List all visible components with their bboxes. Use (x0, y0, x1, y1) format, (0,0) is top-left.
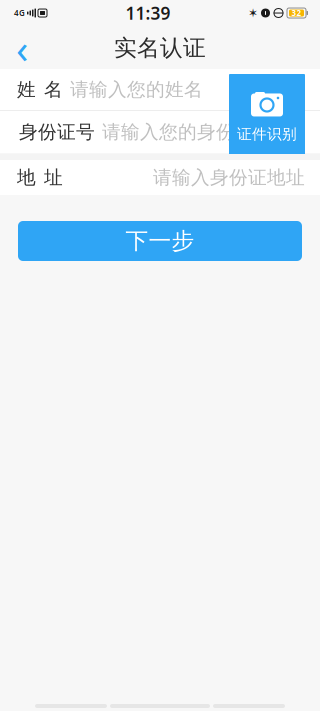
staticText: ‹ (16, 21, 28, 74)
button[interactable]: 证件识别 (229, 74, 305, 155)
staticText: 址 (44, 166, 63, 189)
staticText: 地 (17, 166, 36, 189)
staticText: 实名认证 (114, 34, 206, 62)
staticText: 证件识别 (237, 125, 297, 143)
staticText: 身份证号 (19, 120, 95, 143)
staticText: 4G (14, 8, 25, 18)
staticText: 名 (44, 78, 63, 101)
staticText: 32 (291, 8, 301, 18)
staticText: 下一步 (125, 227, 194, 255)
staticText: 请输入您的身份证号 (102, 120, 273, 143)
staticText: 请输入您的姓名 (70, 78, 203, 101)
button[interactable]: 返回 (0, 26, 44, 70)
staticText: 姓 (17, 78, 36, 101)
staticText: 请输入身份证地址 (153, 166, 305, 189)
staticText: ✶ (248, 6, 258, 20)
staticText: 11:39 (125, 1, 170, 24)
button[interactable]: 下一步 (18, 221, 302, 261)
